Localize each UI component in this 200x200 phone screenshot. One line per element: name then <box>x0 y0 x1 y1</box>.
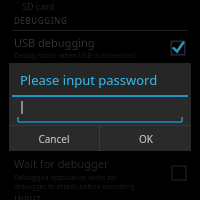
staticText: Wait for debugger <box>14 156 109 171</box>
staticText: Cancel <box>38 132 70 146</box>
staticText: SD card <box>22 0 55 12</box>
staticText: Please input password <box>20 71 158 89</box>
staticText: Debugged application waits for debugger … <box>14 173 135 191</box>
button[interactable]: USB debugging checkbox <box>170 40 186 56</box>
button[interactable]: OK <box>100 126 191 151</box>
staticText: USB debugging <box>14 35 95 50</box>
button[interactable]: Cancel <box>9 126 99 151</box>
button[interactable]: Wait for debugger checkbox <box>172 166 186 180</box>
staticText: Debug mode when USB is connected <box>14 51 136 61</box>
button[interactable]: Wait for debugger <box>0 153 200 193</box>
staticText: INPUT <box>14 194 42 200</box>
button[interactable]: USB debugging <box>0 34 200 62</box>
staticText: OK <box>139 132 153 146</box>
staticText: DEBUGGING <box>14 15 68 26</box>
